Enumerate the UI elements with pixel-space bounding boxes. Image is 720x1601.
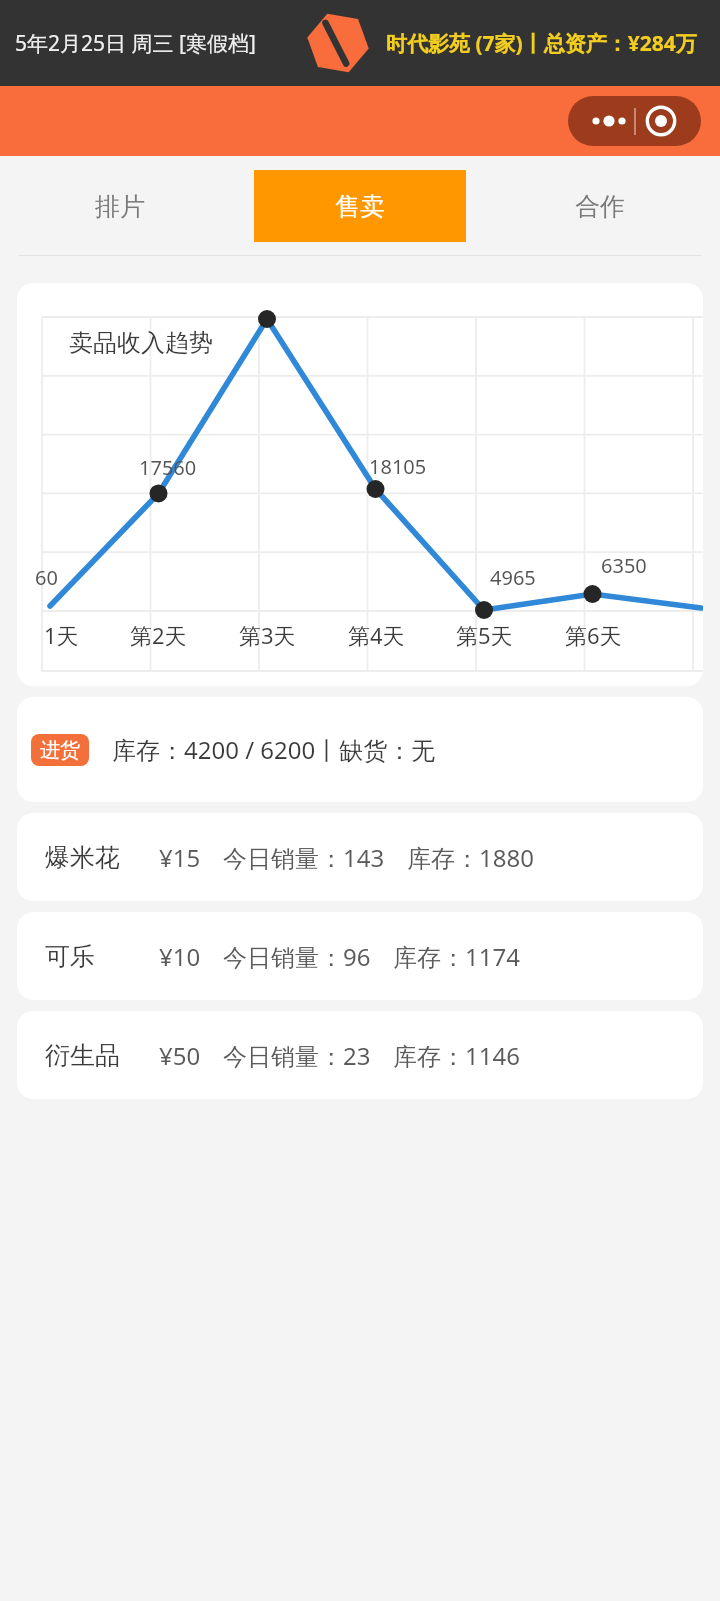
staticText: 5年2月25日 周三 [寒假档] (15, 29, 290, 58)
button[interactable]: 进货 (31, 734, 89, 766)
staticText: 今日销量：96 (223, 940, 371, 973)
button[interactable]: 售卖 (240, 156, 480, 256)
staticText: ¥15 (159, 841, 201, 874)
button[interactable]: 衍生品 (17, 1011, 703, 1099)
staticText: 第6天 (565, 620, 622, 650)
button[interactable]: More options and close (568, 96, 701, 146)
staticText: 今日销量：143 (223, 841, 385, 874)
staticText: ¥10 (159, 940, 201, 973)
button[interactable]: 可乐 (17, 912, 703, 1000)
staticText: 60 (35, 564, 58, 591)
button[interactable]: 卖品收入趋势 chart (17, 283, 703, 686)
staticText: ¥50 (159, 1039, 201, 1072)
staticText: 进货 (40, 738, 80, 763)
staticText: 今日销量：23 (223, 1039, 371, 1072)
staticText: 排片 (95, 191, 145, 222)
staticText: 可乐 (45, 941, 145, 972)
staticText: 卖品收入趋势 (69, 328, 213, 358)
button[interactable]: 排片 (0, 156, 240, 256)
button[interactable]: 合作 (480, 156, 720, 256)
staticText: 18105 (369, 453, 427, 480)
staticText: 第4天 (348, 620, 405, 650)
staticText: 衍生品 (45, 1040, 145, 1071)
button[interactable]: 进货 (17, 697, 703, 802)
staticText: 库存：1146 (393, 1039, 520, 1072)
button[interactable]: 爆米花 (17, 813, 703, 901)
staticText: 爆米花 (45, 842, 145, 873)
staticText: 17560 (139, 454, 197, 481)
staticText: 售卖 (335, 191, 385, 222)
staticText: 时代影苑 (7家)丨总资产：¥284万 (386, 29, 697, 58)
staticText: 第2天 (130, 620, 187, 650)
staticText: 第5天 (456, 620, 513, 650)
staticText: 库存：1880 (407, 841, 534, 874)
staticText: 1天 (44, 620, 79, 650)
staticText: 第3天 (239, 620, 296, 650)
staticText: 6350 (601, 552, 647, 579)
staticText: 合作 (575, 191, 625, 222)
staticText: 4965 (490, 564, 536, 591)
staticText: 库存：1174 (393, 940, 520, 973)
staticText: 库存：4200 / 6200丨缺货：无 (112, 733, 436, 766)
